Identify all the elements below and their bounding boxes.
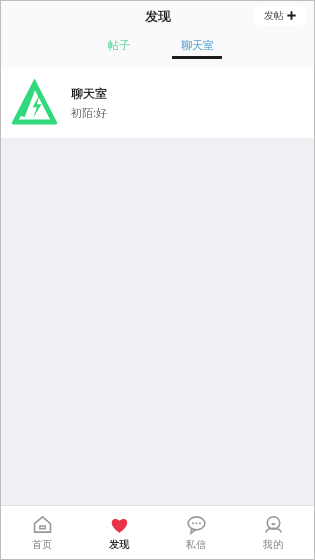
staticText: 我的 xyxy=(263,538,283,551)
button[interactable]: 首页 xyxy=(7,505,77,560)
staticText: 发帖 xyxy=(264,9,284,22)
staticText: 发现 xyxy=(145,8,171,24)
button[interactable]: 聊天室 xyxy=(0,68,315,138)
button[interactable]: 发帖 xyxy=(253,5,307,26)
button[interactable]: 我的 xyxy=(238,505,308,560)
button[interactable]: 聊天室 xyxy=(164,38,230,66)
staticText: 聊天室 xyxy=(181,38,214,52)
staticText: 帖子 xyxy=(108,38,130,52)
staticText: 聊天室 xyxy=(71,86,107,101)
button[interactable]: 帖子 xyxy=(86,38,152,66)
staticText: 首页 xyxy=(32,538,52,551)
button[interactable]: 发现 xyxy=(84,505,154,560)
staticText: 初陌:好 xyxy=(71,105,107,120)
button[interactable]: 私信 xyxy=(161,505,231,560)
staticText: 私信 xyxy=(186,538,206,551)
staticText: 发现 xyxy=(109,538,129,551)
